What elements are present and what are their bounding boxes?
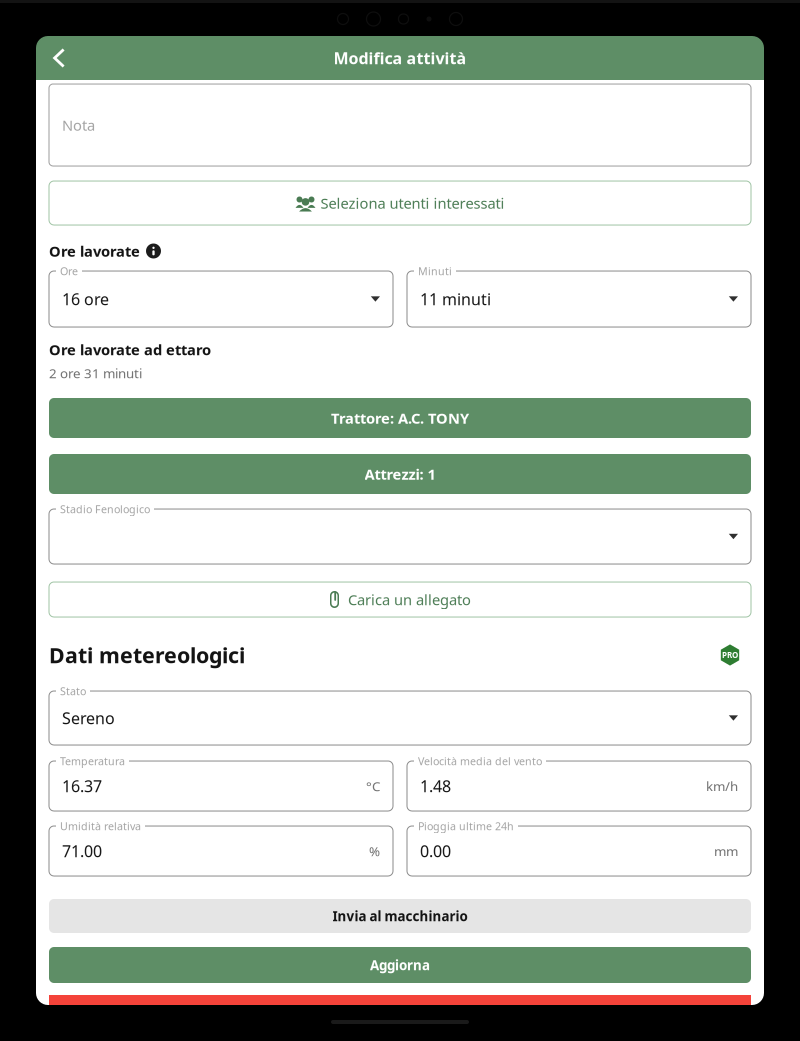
staticText: 16 ore [62,288,109,310]
staticText: Dati metereologici [49,641,245,669]
button[interactable]: Aggiorna [49,947,751,983]
staticText: 11 minuti [420,288,491,310]
staticText: 71.00 [62,840,102,862]
staticText: Temperatura [60,754,125,768]
staticText: Minuti [418,264,452,278]
staticText: Invia al macchinario [332,907,467,925]
staticText: Modifica attività [333,47,466,69]
staticText: Ore [60,264,78,278]
staticText: Trattore: A.C. TONY [331,408,469,428]
staticText: PRO [722,650,738,660]
staticText: Pioggia ultime 24h [418,819,514,833]
staticText: 2 ore 31 minuti [49,364,142,382]
button[interactable]: Indietro [36,36,82,80]
button[interactable]: Seleziona utenti interessati [49,181,751,225]
staticText: Carica un allegato [348,590,471,609]
staticText: Nota [62,115,95,135]
staticText: 16.37 [62,775,102,797]
staticText: mm [714,842,738,860]
button[interactable]: Attrezzi: 1 [49,454,751,494]
staticText: Stato [60,684,86,698]
staticText: km/h [706,777,738,795]
staticText: Aggiorna [370,956,430,974]
button[interactable]: Invia al macchinario [49,899,751,933]
staticText: Seleziona utenti interessati [320,193,504,213]
staticText: % [369,842,380,860]
staticText: Ore lavorate [49,241,140,261]
staticText: Umidità relativa [60,819,141,833]
staticText: Stadio Fenologico [60,502,150,516]
staticText: 1.48 [420,775,451,797]
staticText: Velocità media del vento [418,754,542,768]
staticText: °C [366,777,380,795]
button[interactable]: Trattore: A.C. TONY [49,398,751,438]
staticText: Attrezzi: 1 [364,464,435,484]
staticText: Sereno [62,707,115,729]
button[interactable]: Carica un allegato [49,582,751,617]
staticText: 0.00 [420,840,451,862]
staticText: Ore lavorate ad ettaro [49,340,211,359]
